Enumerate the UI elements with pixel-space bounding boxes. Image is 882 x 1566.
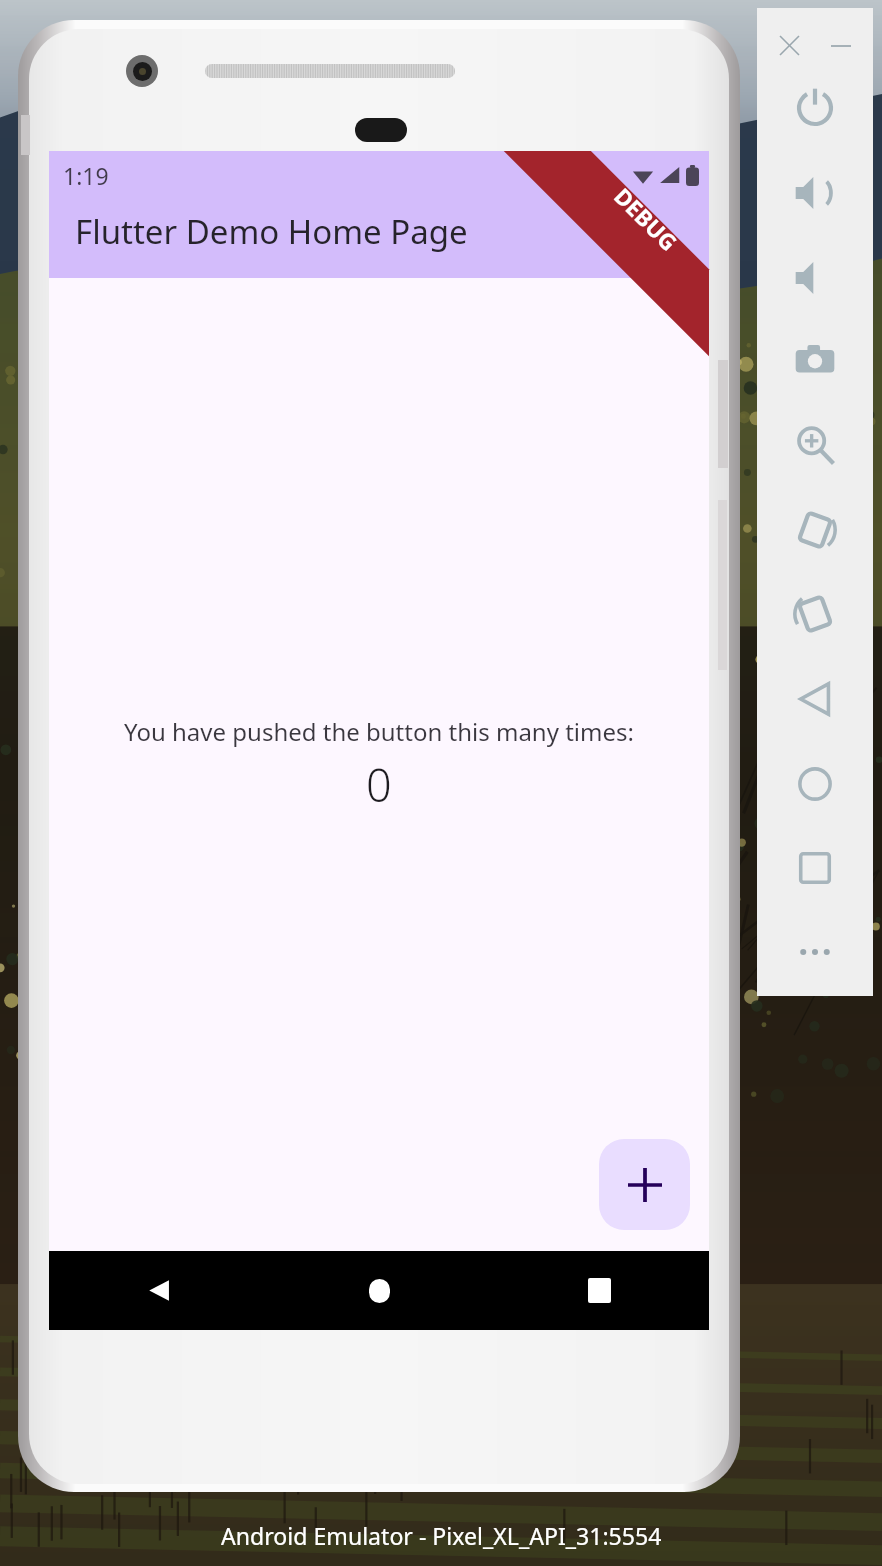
button[interactable]: Power xyxy=(757,78,873,138)
staticText: 0 xyxy=(366,754,392,815)
button[interactable]: Take screenshot xyxy=(757,330,873,390)
staticText: You have pushed the button this many tim… xyxy=(124,715,634,748)
staticText: Flutter Demo Home Page xyxy=(75,209,468,254)
button[interactable]: Back xyxy=(757,669,873,729)
button[interactable]: Minimize xyxy=(823,28,858,63)
button[interactable]: Volume down xyxy=(757,248,873,308)
button[interactable]: Rotate left xyxy=(757,500,873,560)
button[interactable]: Home xyxy=(757,754,873,814)
button[interactable]: Volume up xyxy=(757,163,873,223)
button[interactable]: Recent apps xyxy=(489,1251,709,1330)
button[interactable]: Zoom xyxy=(757,415,873,475)
button[interactable]: Rotate right xyxy=(757,584,873,644)
button[interactable]: Back xyxy=(49,1251,269,1330)
staticText: DEBUG xyxy=(607,181,685,258)
button[interactable]: Home xyxy=(269,1251,489,1330)
button[interactable]: Increment xyxy=(599,1139,690,1230)
button[interactable]: Overview xyxy=(757,838,873,898)
button[interactable]: More xyxy=(757,922,873,982)
button[interactable]: Close xyxy=(772,28,807,63)
staticText: Android Emulator - Pixel_XL_API_31:5554 xyxy=(221,1520,662,1551)
staticText: 1:19 xyxy=(63,160,109,191)
